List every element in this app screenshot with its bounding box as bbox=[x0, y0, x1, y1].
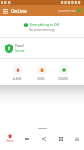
staticText: No active warnings bbox=[29, 28, 55, 32]
button[interactable]: HOME bbox=[33, 64, 49, 81]
staticText: HOME bbox=[33, 77, 49, 81]
staticText: Secure bbox=[15, 49, 25, 53]
button[interactable]: Panel bbox=[0, 38, 84, 58]
button[interactable]: Menu bbox=[0, 5, 11, 16]
staticText: connect me bbox=[58, 9, 76, 13]
button[interactable]: Share bbox=[35, 131, 52, 146]
button[interactable]: More bbox=[69, 131, 84, 146]
button[interactable]: DISARM bbox=[54, 64, 72, 81]
staticText: Home bbox=[6, 139, 14, 143]
button[interactable]: Cameras bbox=[18, 131, 35, 146]
staticText: ALARM bbox=[8, 77, 26, 81]
staticText: Panel bbox=[15, 43, 24, 48]
button[interactable]: Home bbox=[1, 131, 18, 146]
button[interactable]: Apps bbox=[52, 131, 69, 146]
button[interactable]: ALARM bbox=[8, 64, 26, 81]
staticText: DISARM bbox=[54, 77, 72, 81]
staticText: Everything is OK bbox=[30, 22, 60, 27]
staticText: OnLine bbox=[11, 8, 27, 14]
